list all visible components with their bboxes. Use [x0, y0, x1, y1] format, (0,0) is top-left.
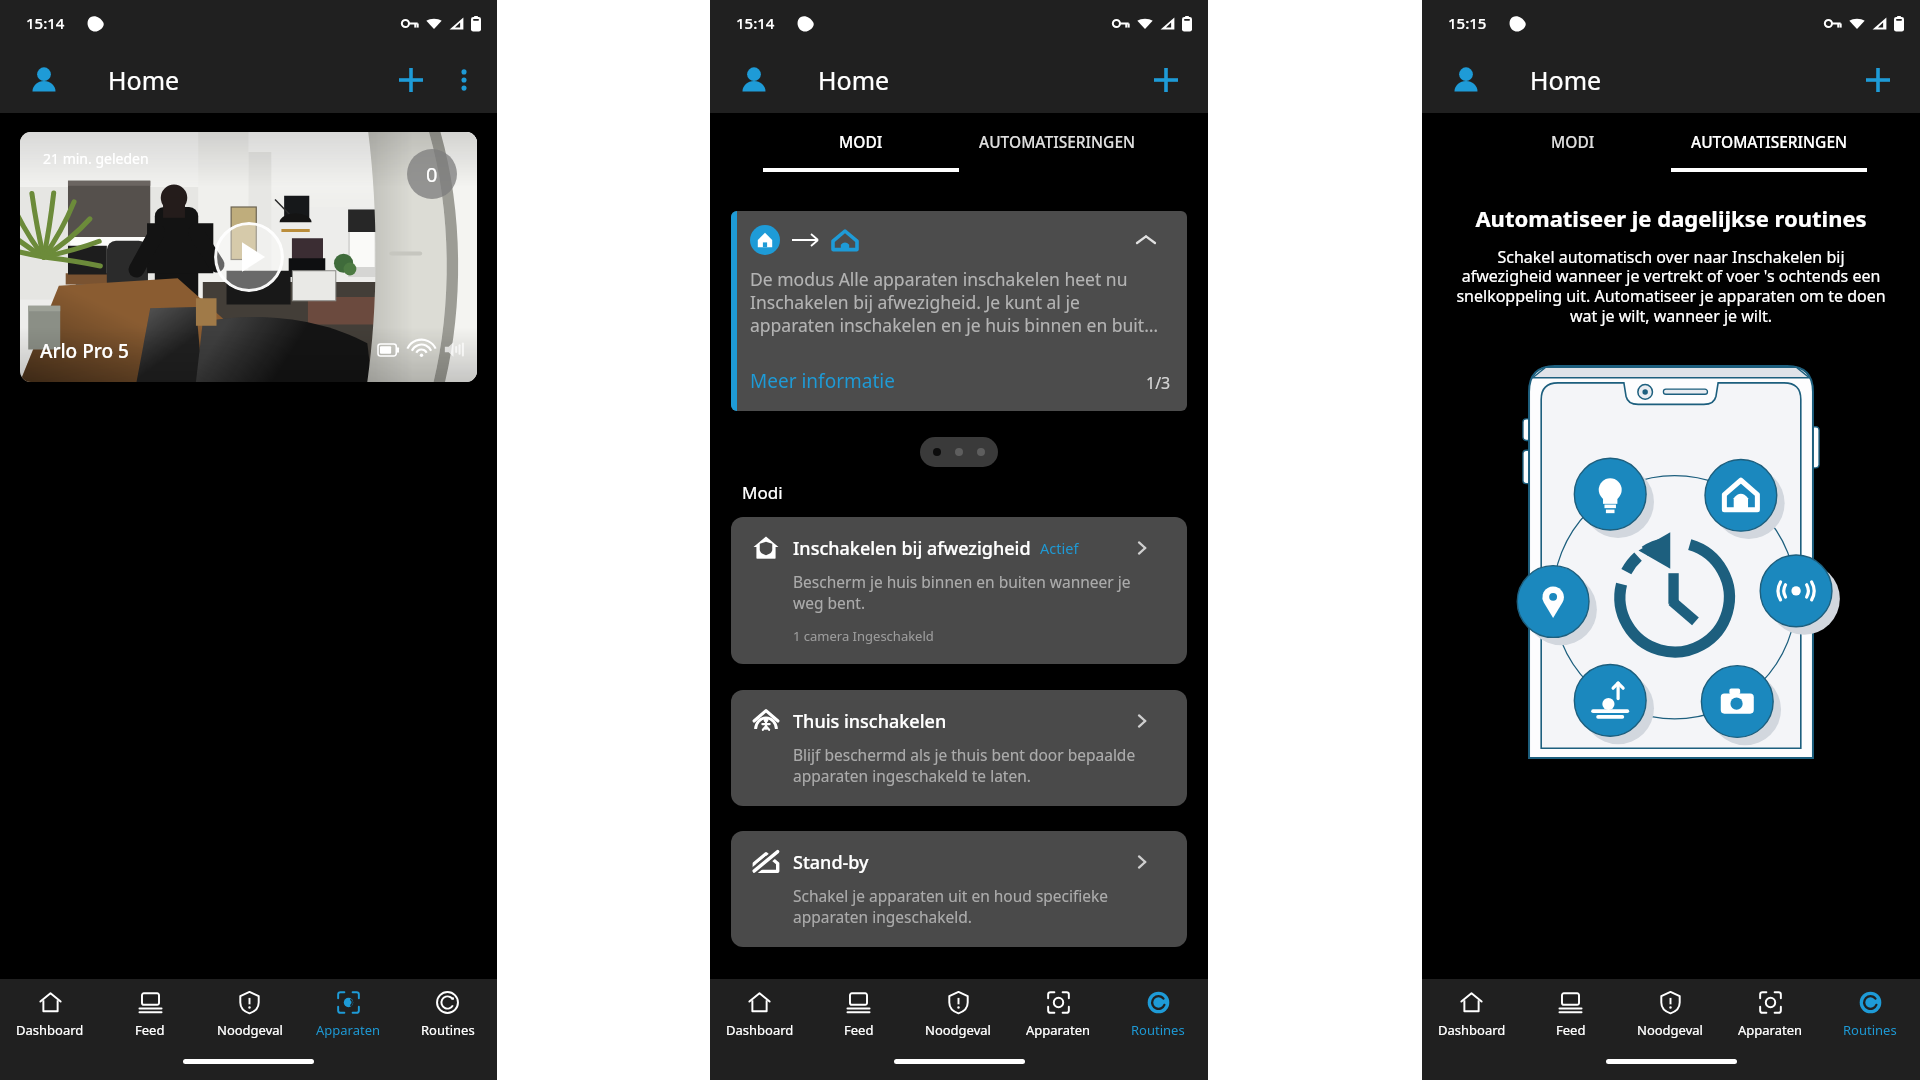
staticText: 1/3 [1146, 372, 1171, 394]
staticText: AUTOMATISERINGEN [979, 131, 1136, 152]
staticText: Dashboard [726, 1021, 794, 1039]
staticText: Stand-by [793, 850, 869, 875]
staticText: Automatiseer je dagelijkse routines [1422, 203, 1920, 233]
staticText: Apparaten [1738, 1021, 1803, 1039]
staticText: De modus Alle apparaten inschakelen heet… [750, 267, 1161, 337]
staticText: AUTOMATISERINGEN [1691, 131, 1848, 152]
staticText: Dashboard [1438, 1021, 1506, 1039]
button[interactable]: MODI [1475, 113, 1671, 175]
button[interactable]: Apparaten [299, 979, 398, 1051]
button[interactable]: Collapse [1131, 225, 1161, 255]
staticText: Routines [1843, 1021, 1897, 1039]
staticText: Feed [844, 1021, 874, 1039]
staticText: MODI [1551, 131, 1595, 152]
button[interactable]: Profile [738, 64, 770, 96]
button[interactable]: Add [1858, 60, 1898, 100]
button[interactable]: Meer informatie [750, 368, 895, 394]
staticText: 15:14 [736, 13, 775, 33]
button[interactable]: AUTOMATISERINGEN [959, 113, 1155, 175]
staticText: Home [818, 63, 890, 97]
button[interactable]: Dashboard [0, 979, 100, 1051]
staticText: Noodgeval [1637, 1021, 1703, 1039]
button[interactable]: Stand-by [731, 831, 1187, 947]
staticText: MODI [839, 131, 883, 152]
staticText: 1 camera Ingeschakeld [793, 627, 934, 645]
button[interactable]: Routines [398, 979, 497, 1051]
button[interactable]: Routines [1820, 979, 1920, 1051]
button[interactable]: Play [214, 222, 284, 292]
staticText: Feed [1556, 1021, 1586, 1039]
staticText: Schakel je apparaten uit en houd specifi… [793, 885, 1152, 928]
staticText: Home [1530, 63, 1602, 97]
button[interactable]: Add [1146, 60, 1186, 100]
button[interactable]: Apparaten [1008, 979, 1108, 1051]
button[interactable]: Profile [28, 64, 60, 96]
staticText: Schakel automatisch over naar Inschakele… [1453, 246, 1889, 327]
button[interactable]: Collapse [731, 211, 1187, 411]
button[interactable]: Thuis inschakelen [731, 690, 1187, 806]
button[interactable]: Noodgeval [1620, 979, 1720, 1051]
button[interactable]: Profile [1450, 64, 1482, 96]
button[interactable]: Inschakelen bij afwezigheid [731, 517, 1187, 664]
button[interactable]: Feed [809, 979, 908, 1051]
button[interactable]: MODI [763, 113, 959, 175]
button[interactable]: Dashboard [1422, 979, 1521, 1051]
button[interactable]: Noodgeval [200, 979, 299, 1051]
staticText: Bescherm je huis binnen en buiten wannee… [793, 571, 1152, 614]
staticText: 15:14 [26, 13, 65, 33]
staticText: Apparaten [316, 1021, 381, 1039]
staticText: Home [108, 63, 180, 97]
button[interactable]: Add [391, 60, 431, 100]
button[interactable]: Routines [1108, 979, 1208, 1051]
button[interactable]: Dashboard [710, 979, 809, 1051]
staticText: Routines [1131, 1021, 1185, 1039]
staticText: Inschakelen bij afwezigheid [793, 536, 1031, 561]
button[interactable]: Apparaten [1720, 979, 1820, 1051]
button[interactable]: Arlo Pro 5 camera clip [20, 132, 477, 382]
staticText: Modi [742, 481, 783, 504]
staticText: Noodgeval [925, 1021, 991, 1039]
button[interactable]: AUTOMATISERINGEN [1671, 113, 1867, 175]
staticText: Noodgeval [217, 1021, 283, 1039]
staticText: Actief [1040, 538, 1079, 558]
button[interactable]: Noodgeval [908, 979, 1008, 1051]
button[interactable]: More options [449, 65, 479, 95]
staticText: Apparaten [1026, 1021, 1091, 1039]
button[interactable]: Feed [100, 979, 200, 1051]
staticText: 15:15 [1448, 13, 1487, 33]
button[interactable]: 0 new recordings [407, 149, 457, 199]
staticText: 21 min. geleden [43, 149, 149, 168]
staticText: Feed [135, 1021, 165, 1039]
staticText: Arlo Pro 5 [40, 338, 129, 364]
staticText: Dashboard [16, 1021, 84, 1039]
staticText: Thuis inschakelen [793, 709, 947, 734]
staticText: Blijf beschermd als je thuis bent door b… [793, 744, 1152, 787]
staticText: 0 [426, 161, 438, 188]
button[interactable]: Feed [1521, 979, 1620, 1051]
staticText: Routines [421, 1021, 475, 1039]
